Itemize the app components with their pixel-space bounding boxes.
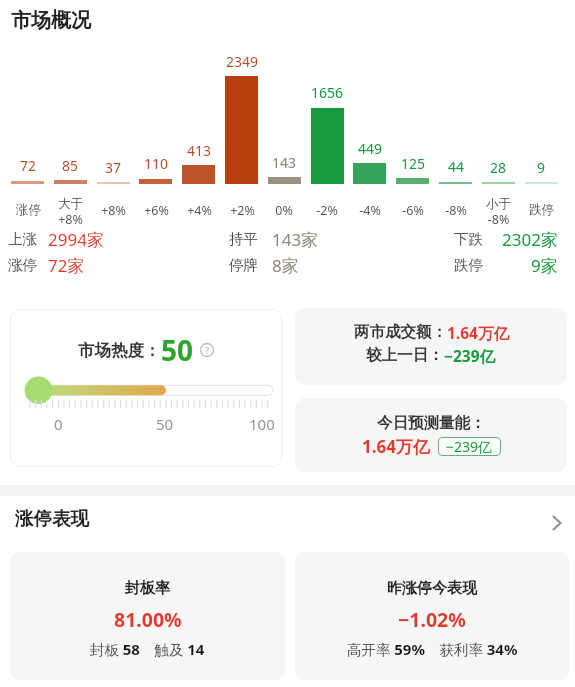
staticText: −1.02% <box>398 606 466 633</box>
staticText: 涨停 <box>16 202 41 218</box>
staticText: 449 <box>358 139 383 158</box>
staticText: 两市成交额： <box>354 322 447 342</box>
staticText: 小于 -8% <box>486 196 511 227</box>
staticText: -8% <box>445 202 467 219</box>
staticText: 50 <box>161 331 194 369</box>
staticText: 下跌 <box>454 230 483 248</box>
staticText: 较上一日： <box>366 345 444 365</box>
staticText: -6% <box>402 202 424 219</box>
staticText: 1.64万亿 <box>447 322 509 343</box>
button[interactable]: 今日预测量能： <box>295 398 567 472</box>
button[interactable]: 两市成交额： <box>295 308 567 385</box>
staticText: 封板率 <box>125 579 170 598</box>
staticText: −239亿 <box>444 345 496 366</box>
staticText: ? <box>205 344 209 356</box>
button[interactable]: 封板率 <box>10 552 285 680</box>
button[interactable]: 市场热度： <box>10 309 282 467</box>
staticText: +8% <box>101 202 126 219</box>
staticText: 0% <box>275 202 293 219</box>
staticText: 跌停 <box>454 256 483 274</box>
staticText: +2% <box>230 202 255 219</box>
staticText: 涨停 <box>8 256 37 274</box>
staticText: 昨涨停今表现 <box>387 579 477 598</box>
staticText: 143 <box>272 153 297 172</box>
staticText: 72家 <box>48 254 85 277</box>
staticText: 143家 <box>272 228 319 251</box>
staticText: 持平 <box>229 230 258 248</box>
staticText: -2% <box>316 202 338 219</box>
staticText: -4% <box>359 202 381 219</box>
button[interactable]: 涨停表现 <box>0 507 575 530</box>
staticText: 市场热度： <box>78 340 161 361</box>
staticText: −239亿 <box>446 437 493 456</box>
staticText: 0 <box>54 414 63 434</box>
staticText: 110 <box>144 154 169 173</box>
staticText: 100 <box>249 414 275 434</box>
staticText: 72 <box>20 156 37 175</box>
staticText: 85 <box>62 156 79 175</box>
staticText: 81.00% <box>114 606 182 633</box>
staticText: 50 <box>156 414 174 434</box>
staticText: 上涨 <box>8 230 37 248</box>
staticText: 125 <box>401 154 426 173</box>
staticText: 2994家 <box>48 228 104 251</box>
staticText: 2349 <box>226 52 259 71</box>
staticText: 市场概况 <box>11 8 91 33</box>
staticText: 2302家 <box>502 228 558 251</box>
staticText: 9家 <box>531 254 558 277</box>
staticText: 今日预测量能： <box>377 413 486 433</box>
staticText: 1.64万亿 <box>362 435 430 458</box>
button[interactable]: 昨涨停今表现 <box>295 552 569 680</box>
staticText: 高开率 59% 获利率 34% <box>347 639 518 659</box>
staticText: 413 <box>187 141 212 160</box>
staticText: 停牌 <box>229 256 258 274</box>
staticText: 8家 <box>272 254 299 277</box>
staticText: 1656 <box>311 83 344 102</box>
staticText: 封板 58 触及 14 <box>90 639 205 659</box>
staticText: 44 <box>448 157 465 176</box>
staticText: 大于 +8% <box>58 196 83 227</box>
staticText: +6% <box>144 202 169 219</box>
staticText: +4% <box>187 202 212 219</box>
staticText: 9 <box>537 158 546 177</box>
staticText: 37 <box>105 158 122 177</box>
staticText: 涨停表现 <box>15 507 89 530</box>
staticText: 28 <box>490 158 507 177</box>
staticText: 跌停 <box>529 202 554 218</box>
